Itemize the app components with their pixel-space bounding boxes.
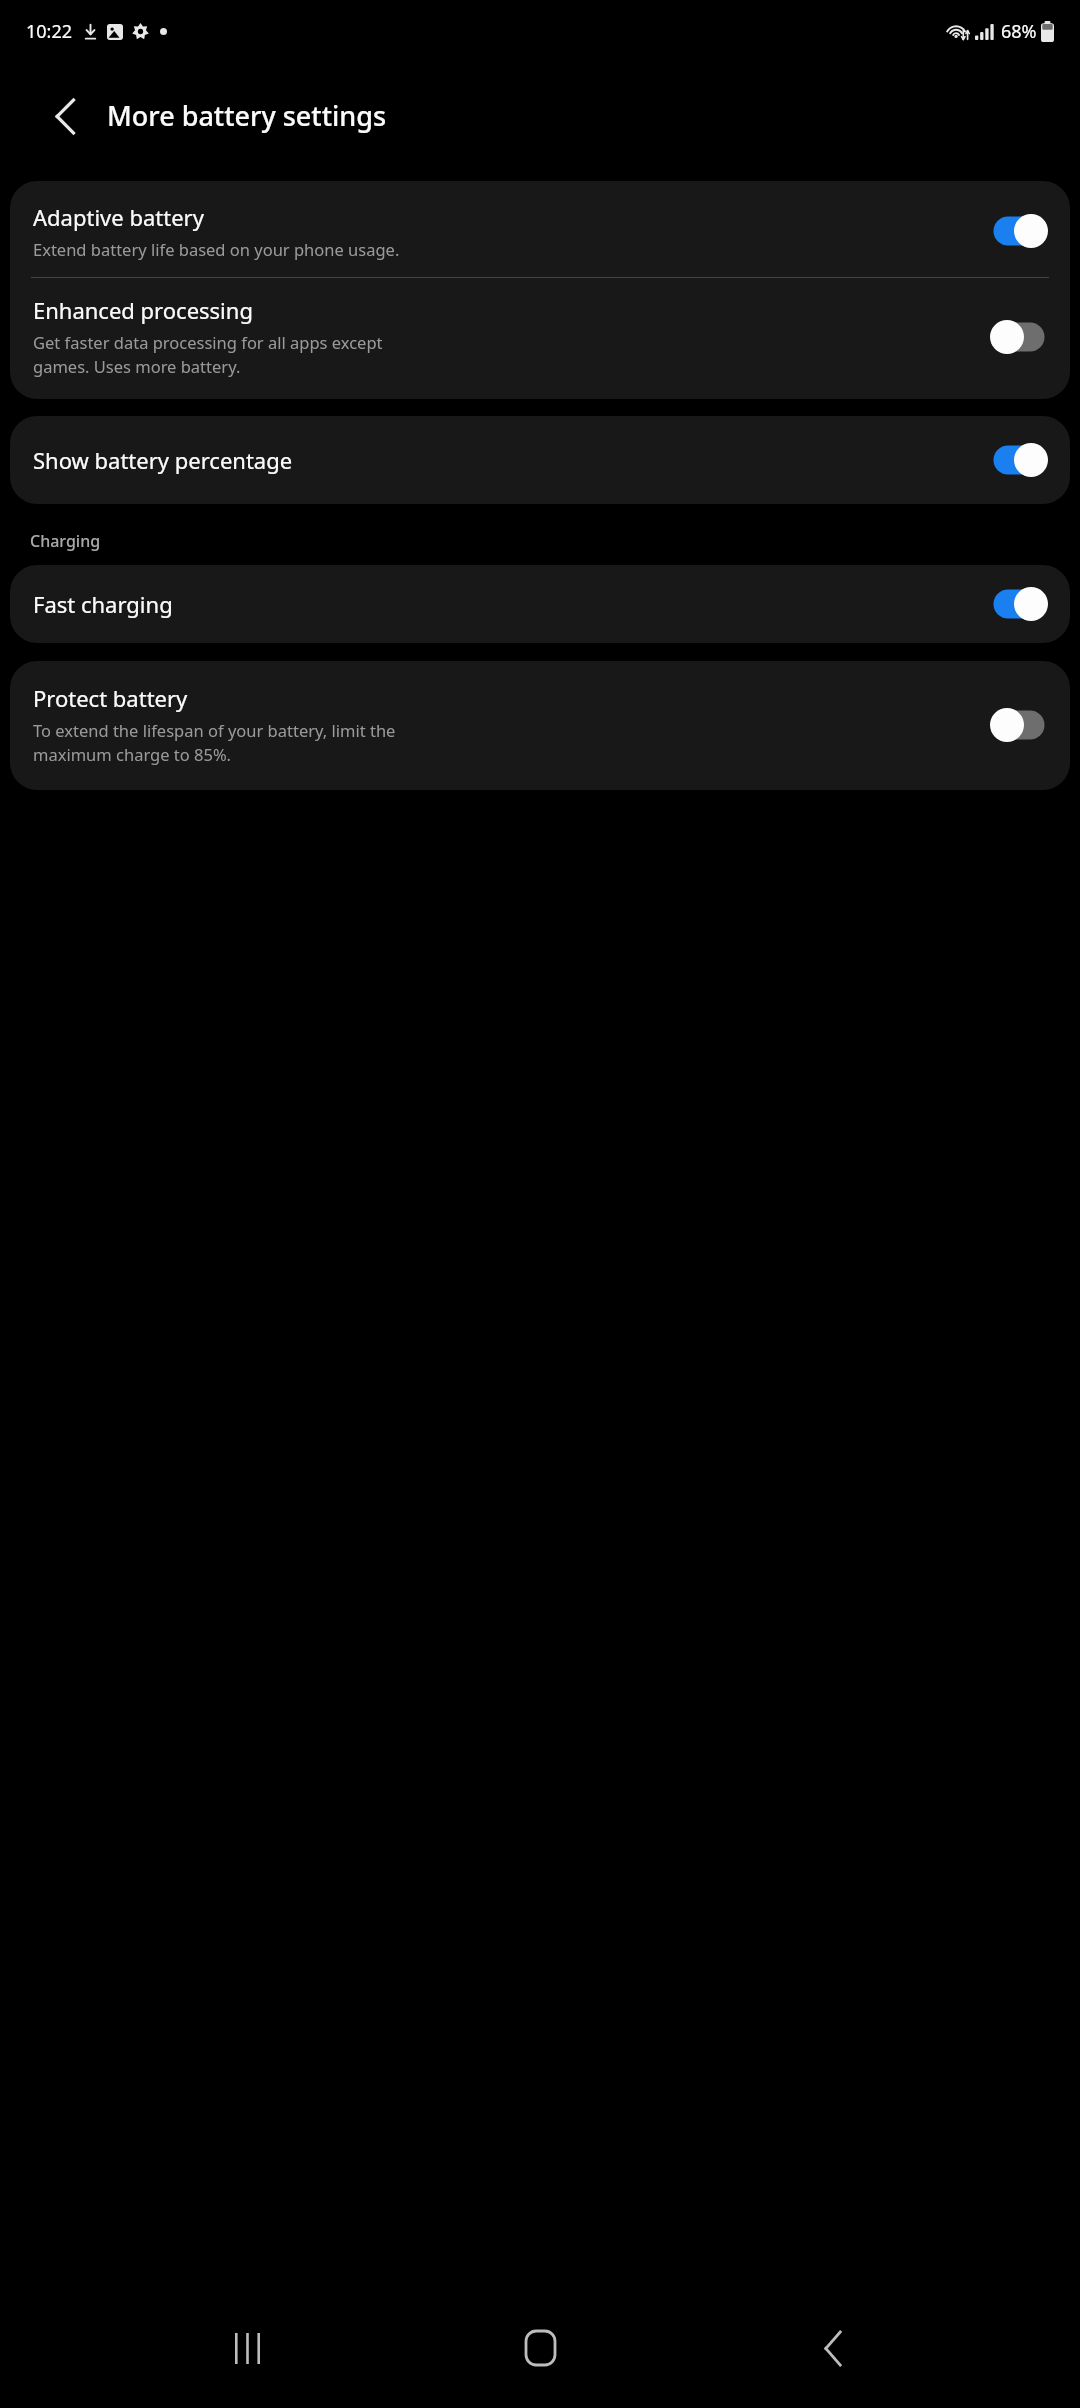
staticText: Enhanced processing bbox=[33, 295, 253, 325]
staticText: Fast charging bbox=[33, 589, 173, 619]
button[interactable]: Fast charging bbox=[10, 565, 1070, 643]
staticText: Extend battery life based on your phone … bbox=[33, 238, 400, 260]
staticText: Adaptive battery bbox=[33, 202, 204, 232]
staticText: To extend the lifespan of your battery, … bbox=[33, 719, 396, 766]
button[interactable]: On bbox=[990, 443, 1048, 477]
button[interactable]: Adaptive battery bbox=[10, 181, 1070, 277]
button[interactable]: Protect battery bbox=[10, 661, 1070, 790]
button[interactable]: Off bbox=[990, 320, 1048, 354]
button[interactable]: On bbox=[990, 587, 1048, 621]
button[interactable]: Show battery percentage bbox=[10, 416, 1070, 504]
staticText: Charging bbox=[30, 530, 101, 552]
staticText: Show battery percentage bbox=[33, 445, 293, 475]
button[interactable]: On bbox=[990, 214, 1048, 248]
staticText: Protect battery bbox=[33, 683, 188, 713]
staticText: Get faster data processing for all apps … bbox=[33, 331, 383, 378]
button[interactable]: Recent apps bbox=[201, 2302, 293, 2394]
staticText: More battery settings bbox=[107, 97, 387, 134]
staticText: 68% bbox=[1001, 19, 1037, 44]
button[interactable]: Enhanced processing bbox=[10, 278, 1070, 399]
button[interactable]: Off bbox=[990, 708, 1048, 742]
staticText: 10:22 bbox=[26, 19, 73, 44]
button[interactable]: Back bbox=[787, 2302, 879, 2394]
button[interactable]: Home bbox=[494, 2302, 586, 2394]
button[interactable]: Navigate up bbox=[36, 87, 94, 145]
